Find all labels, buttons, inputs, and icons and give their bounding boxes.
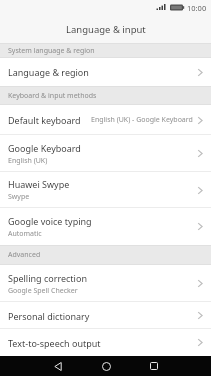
button[interactable] — [34, 356, 82, 376]
staticText: Language & region — [8, 66, 89, 78]
staticText: System language & region — [8, 46, 95, 56]
button[interactable] — [130, 356, 178, 376]
staticText: Language & input — [66, 23, 146, 36]
staticText: Google Keyboard — [8, 142, 81, 154]
staticText: Text-to-speech output — [8, 337, 101, 349]
button[interactable]: Google voice typing — [0, 208, 211, 245]
staticText: Spelling correction — [8, 272, 87, 284]
button[interactable]: Text-to-speech output — [0, 329, 211, 356]
button[interactable] — [82, 356, 130, 376]
staticText: English (UK) — [8, 156, 48, 166]
staticText: Google voice typing — [8, 215, 92, 227]
staticText: Huawei Swype — [8, 178, 70, 190]
staticText: Google Spell Checker — [8, 286, 78, 296]
button[interactable]: Spelling correction — [0, 265, 211, 302]
button[interactable]: Default keyboard — [0, 105, 211, 135]
staticText: Default keyboard — [8, 114, 81, 126]
staticText: Personal dictionary — [8, 310, 90, 322]
button[interactable]: Huawei Swype — [0, 172, 211, 208]
staticText: 10:00 — [187, 3, 207, 13]
staticText: Swype — [8, 192, 30, 202]
staticText: Keyboard & input methods — [8, 91, 97, 101]
button[interactable]: Personal dictionary — [0, 302, 211, 329]
button[interactable]: Language & region — [0, 58, 211, 86]
staticText: Advanced — [8, 250, 41, 260]
staticText: English (UK) - Google Keyboard — [91, 115, 193, 125]
staticText: Automatic — [8, 229, 42, 239]
button[interactable]: Google Keyboard — [0, 135, 211, 172]
